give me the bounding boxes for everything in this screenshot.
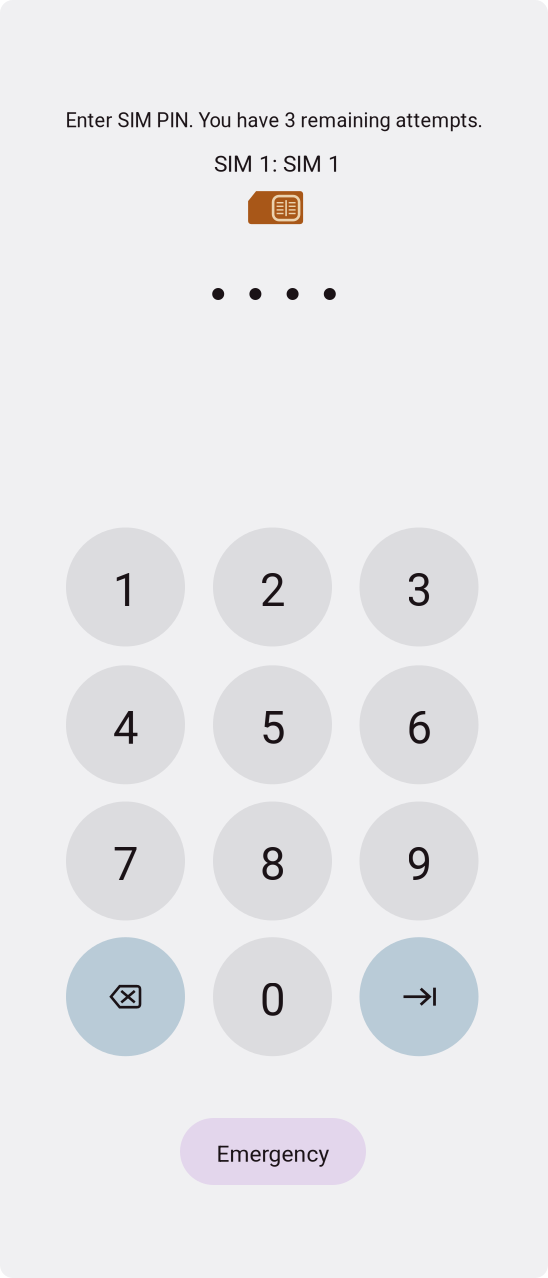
button[interactable]: 4 (66, 665, 185, 784)
staticText: 6 (406, 702, 431, 755)
button[interactable]: 1 (66, 527, 185, 646)
button[interactable]: 0 (213, 937, 332, 1056)
button[interactable]: 9 (359, 801, 478, 920)
button[interactable]: 6 (359, 665, 478, 784)
staticText: 1 (113, 564, 138, 617)
button[interactable]: 7 (66, 801, 185, 920)
button[interactable]: 2 (213, 527, 332, 646)
staticText: 9 (406, 838, 431, 891)
button[interactable]: 8 (213, 801, 332, 920)
staticText: Enter SIM PIN. You have 3 remaining atte… (65, 109, 482, 132)
staticText: 3 (406, 564, 431, 617)
staticText: 2 (260, 564, 285, 617)
staticText: 7 (113, 838, 138, 891)
staticText: 8 (260, 838, 285, 891)
staticText: SIM 1: SIM 1 (214, 151, 341, 177)
staticText: 0 (260, 974, 285, 1027)
button[interactable]: 5 (213, 665, 332, 784)
staticText: 4 (113, 702, 138, 755)
staticText: Emergency (216, 1141, 329, 1167)
button[interactable]: Delete (66, 937, 185, 1056)
button[interactable]: 3 (359, 527, 478, 646)
button[interactable]: Emergency (180, 1118, 366, 1185)
button[interactable]: Enter (359, 937, 478, 1056)
staticText: 5 (260, 702, 285, 755)
